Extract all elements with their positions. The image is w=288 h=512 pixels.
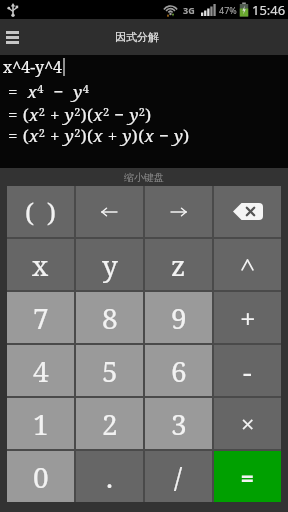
- staticText: 0: [33, 458, 49, 496]
- staticText: 5: [102, 352, 118, 390]
- staticText: x: [32, 246, 49, 284]
- staticText: 2: [102, 405, 118, 443]
- button[interactable]: [76, 186, 143, 237]
- button[interactable]: y: [76, 239, 143, 290]
- button[interactable]: +: [214, 292, 281, 343]
- button[interactable]: .: [76, 451, 143, 502]
- staticText: 47%: [219, 4, 237, 16]
- staticText: 7: [33, 299, 49, 337]
- button[interactable]: 8: [76, 292, 143, 343]
- staticText: 3G: [183, 4, 195, 16]
- staticText: 1: [33, 405, 49, 443]
- staticText: ×: [241, 407, 255, 440]
- staticText: z: [171, 246, 186, 284]
- staticText: /: [174, 458, 183, 496]
- staticText: 8: [102, 299, 118, 337]
- staticText: -: [243, 352, 252, 390]
- button[interactable]: x: [7, 239, 74, 290]
- staticText: = x4 − y4: [8, 80, 90, 103]
- staticText: x^4-y^4: [3, 56, 63, 77]
- button[interactable]: ( ): [7, 186, 74, 237]
- staticText: 缩小键盘: [124, 171, 164, 184]
- button[interactable]: 7: [7, 292, 74, 343]
- button[interactable]: [214, 239, 281, 290]
- button[interactable]: 1: [7, 398, 74, 449]
- button[interactable]: ×: [214, 398, 281, 449]
- button[interactable]: 6: [145, 345, 212, 396]
- staticText: ( ): [25, 194, 56, 229]
- button[interactable]: 5: [76, 345, 143, 396]
- button[interactable]: 缩小键盘: [0, 168, 288, 186]
- button[interactable]: [6, 31, 19, 44]
- button[interactable]: [145, 186, 212, 237]
- staticText: 6: [171, 352, 187, 390]
- staticText: = (x2 + y2)(x + y)(x − y): [8, 124, 190, 147]
- button[interactable]: 3: [145, 398, 212, 449]
- button[interactable]: 4: [7, 345, 74, 396]
- staticText: +: [240, 299, 256, 337]
- staticText: .: [106, 458, 114, 496]
- staticText: 因式分解: [115, 30, 159, 44]
- button[interactable]: 2: [76, 398, 143, 449]
- button[interactable]: [214, 186, 281, 237]
- button[interactable]: z: [145, 239, 212, 290]
- staticText: 15:46: [252, 1, 286, 19]
- button[interactable]: /: [145, 451, 212, 502]
- button[interactable]: 0: [7, 451, 74, 502]
- button[interactable]: 9: [145, 292, 212, 343]
- staticText: =: [241, 462, 254, 492]
- staticText: 3: [171, 405, 187, 443]
- button[interactable]: =: [214, 451, 281, 502]
- staticText: y: [102, 246, 118, 284]
- staticText: = (x2 + y2)(x2 − y2): [8, 103, 152, 126]
- button[interactable]: -: [214, 345, 281, 396]
- staticText: 9: [171, 299, 187, 337]
- staticText: 4: [33, 352, 49, 390]
